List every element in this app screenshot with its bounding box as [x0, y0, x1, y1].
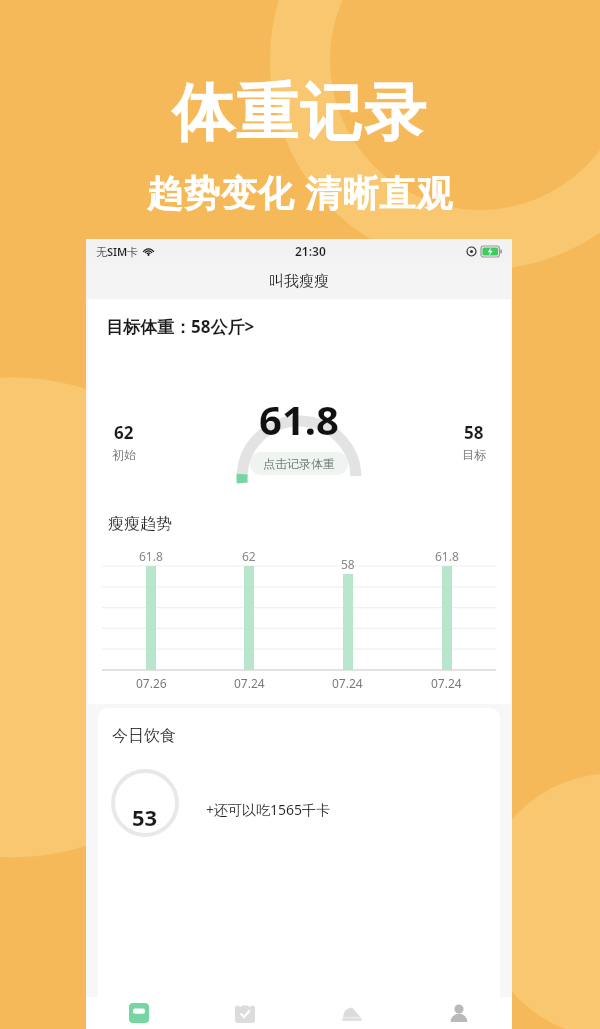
staticText: 目标体重：58公斤>: [106, 315, 255, 338]
staticText: 21:30: [295, 243, 326, 259]
staticText: 07.26: [136, 675, 167, 691]
staticText: 体重记录: [0, 74, 600, 152]
staticText: 趋势变化 清晰直观: [0, 168, 600, 217]
staticText: +还可以吃1565千卡: [206, 800, 331, 819]
button[interactable]: Food: [298, 997, 405, 1029]
staticText: 62: [114, 421, 134, 444]
button[interactable]: Profile: [405, 997, 512, 1029]
staticText: 叫我瘦瘦: [269, 272, 329, 291]
staticText: 61.8: [259, 392, 339, 446]
staticText: 07.24: [431, 675, 462, 691]
staticText: 点击记录体重: [263, 456, 335, 471]
staticText: 今日饮食: [112, 726, 176, 746]
staticText: 58: [341, 556, 355, 572]
staticText: 62: [242, 548, 256, 564]
button[interactable]: Weight: [86, 997, 192, 1029]
staticText: 无SIM卡: [96, 244, 139, 259]
staticText: 07.24: [234, 675, 265, 691]
button[interactable]: 目标体重：58公斤>: [88, 313, 510, 340]
staticText: 初始: [112, 447, 136, 462]
button[interactable]: 点击记录体重: [250, 452, 348, 475]
staticText: 瘦瘦趋势: [108, 514, 172, 534]
staticText: 53: [132, 802, 158, 832]
staticText: 07.24: [332, 675, 363, 691]
staticText: 目标: [462, 447, 486, 462]
staticText: 58: [464, 421, 484, 444]
staticText: 61.8: [435, 548, 459, 564]
staticText: 61.8: [139, 548, 163, 564]
button[interactable]: Plan: [192, 997, 298, 1029]
